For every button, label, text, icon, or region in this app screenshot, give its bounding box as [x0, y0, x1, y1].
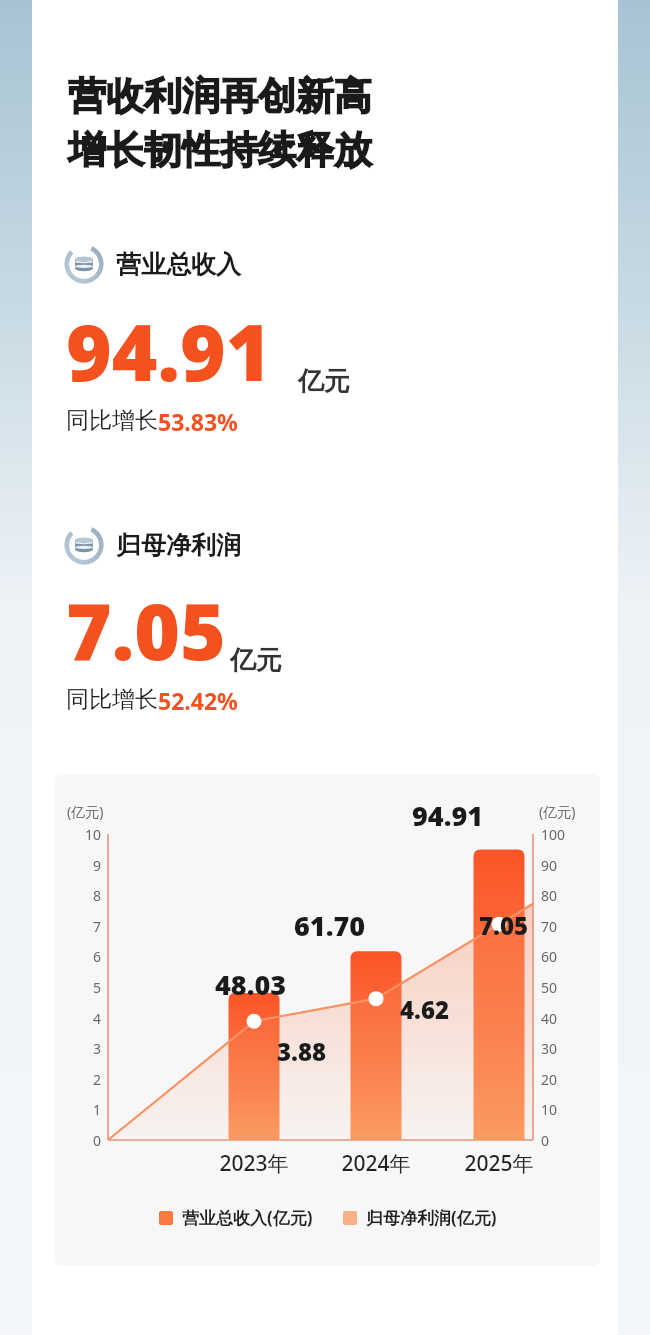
staticText: 2025年	[459, 1149, 539, 1178]
button[interactable]: 归母净利润图标	[62, 523, 241, 567]
staticText: 1	[77, 1100, 101, 1119]
staticText: 10	[541, 1100, 558, 1119]
staticText: 40	[541, 1009, 558, 1028]
staticText: 60	[541, 947, 558, 966]
staticText: 53.83%	[158, 406, 238, 437]
staticText: 2023年	[214, 1149, 294, 1178]
staticText: 营业总收入(亿元)	[182, 1206, 313, 1229]
staticText: 9	[77, 856, 101, 875]
staticText: 30	[541, 1039, 558, 1058]
staticText: 6	[77, 947, 101, 966]
staticText: 100	[541, 825, 566, 844]
button[interactable]: 归母净利润(亿元)	[343, 1206, 497, 1229]
staticText: 80	[541, 886, 558, 905]
staticText: 营收利润再创新高	[68, 72, 372, 120]
staticText: 94.91	[66, 298, 272, 404]
staticText: 增长韧性持续释放	[68, 126, 372, 174]
staticText: 52.42%	[158, 685, 238, 716]
staticText: 0	[77, 1131, 101, 1150]
staticText: 亿元	[298, 365, 350, 398]
staticText: 50	[541, 978, 558, 997]
staticText: 0	[541, 1131, 550, 1150]
staticText: 3.88	[277, 1035, 327, 1068]
staticText: (亿元)	[539, 802, 576, 821]
button[interactable]: (亿元)	[55, 774, 600, 1266]
staticText: 营业总收入	[116, 249, 241, 280]
staticText: 70	[541, 917, 558, 936]
staticText: 3	[77, 1039, 101, 1058]
button[interactable]: 营业总收入(亿元)	[159, 1206, 313, 1229]
staticText: 亿元	[230, 644, 282, 677]
staticText: 7.05	[479, 909, 529, 942]
staticText: 61.70	[294, 907, 366, 944]
staticText: 4.62	[400, 993, 450, 1026]
staticText: 归母净利润	[116, 530, 241, 561]
other: 归母净利润图标	[62, 523, 106, 567]
staticText: 5	[77, 978, 101, 997]
staticText: 94.91	[412, 797, 484, 834]
staticText: 7	[77, 917, 101, 936]
staticText: 48.03	[215, 966, 287, 1003]
staticText: 2024年	[336, 1149, 416, 1178]
staticText: 10	[77, 825, 101, 844]
staticText: 7.05	[66, 577, 226, 683]
staticText: 20	[541, 1070, 558, 1089]
staticText: 4	[77, 1009, 101, 1028]
staticText: 同比增长	[66, 406, 158, 435]
staticText: 同比增长	[66, 685, 158, 714]
other: 营业总收入图标	[62, 242, 106, 286]
staticText: 90	[541, 856, 558, 875]
staticText: (亿元)	[67, 802, 104, 821]
staticText: 归母净利润(亿元)	[366, 1206, 497, 1229]
staticText: 2	[77, 1070, 101, 1089]
staticText: 8	[77, 886, 101, 905]
button[interactable]: 营业总收入图标	[62, 242, 241, 286]
